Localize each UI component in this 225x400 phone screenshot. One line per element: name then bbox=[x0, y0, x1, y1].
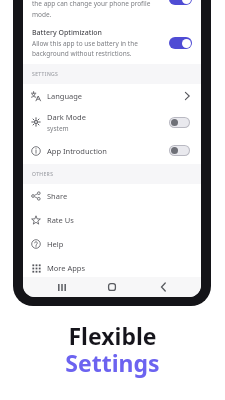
staticText: Settings bbox=[65, 347, 160, 378]
staticText: Dark Mode bbox=[47, 112, 86, 122]
button[interactable]: Home bbox=[102, 278, 122, 296]
button[interactable]: Share bbox=[23, 184, 201, 208]
button[interactable]: Battery Optimization bbox=[23, 18, 201, 64]
button[interactable]: Help bbox=[23, 232, 201, 256]
staticText: App Introduction bbox=[47, 146, 169, 156]
staticText: Tap to allow the app so that the app can… bbox=[32, 0, 151, 18]
button[interactable]: Profile Mode bbox=[23, 0, 201, 18]
staticText: OTHERS bbox=[32, 171, 54, 178]
button[interactable]: Recent apps bbox=[52, 278, 72, 296]
staticText: More Apps bbox=[47, 263, 86, 273]
staticText: Battery Optimization bbox=[32, 28, 102, 38]
staticText: Flexible bbox=[68, 320, 157, 351]
staticText: Share bbox=[47, 191, 68, 201]
staticText: Allow this app to use battery in the bac… bbox=[32, 39, 138, 58]
button[interactable]: Language bbox=[23, 84, 201, 107]
button[interactable]: Dark Mode bbox=[23, 107, 201, 137]
staticText: Help bbox=[47, 239, 64, 249]
button[interactable]: More Apps bbox=[23, 256, 201, 280]
staticText: system bbox=[47, 124, 69, 133]
button[interactable]: Back bbox=[153, 278, 173, 296]
staticText: Rate Us bbox=[47, 215, 74, 225]
button[interactable]: App Introduction bbox=[23, 137, 201, 164]
staticText: SETTINGS bbox=[32, 71, 59, 78]
staticText: Language bbox=[47, 91, 183, 101]
button[interactable]: Rate Us bbox=[23, 208, 201, 232]
